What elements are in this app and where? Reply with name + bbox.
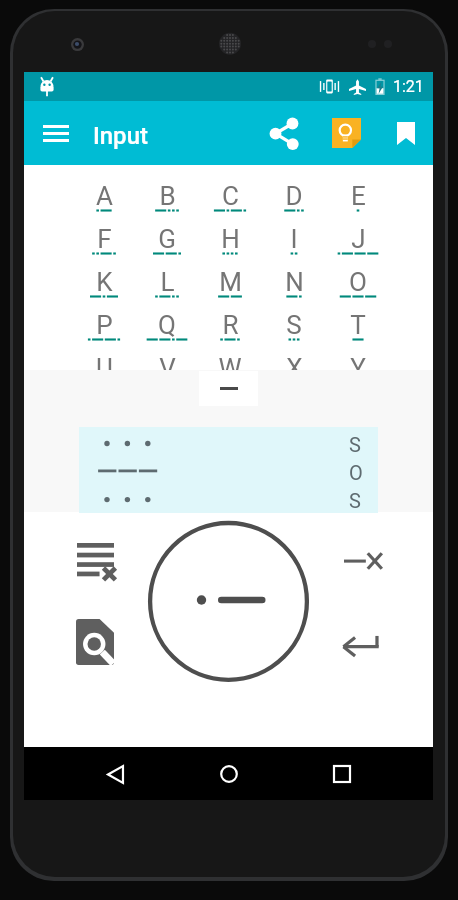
staticText: R (222, 310, 239, 340)
staticText: T (350, 310, 366, 340)
staticText: K (96, 267, 113, 297)
button[interactable]: Delete last symbol (339, 537, 387, 585)
button[interactable]: I (262, 224, 326, 267)
button[interactable]: W dash (199, 371, 258, 406)
button[interactable]: R (198, 310, 262, 353)
button[interactable]: Q (135, 310, 198, 353)
button[interactable]: B (135, 181, 198, 224)
button[interactable]: H (198, 224, 262, 267)
button[interactable]: Morse input key (146, 519, 311, 684)
button[interactable]: N (262, 267, 326, 310)
button[interactable]: F (72, 224, 135, 267)
staticText: V (159, 353, 176, 370)
staticText: I (290, 224, 298, 254)
staticText: X (286, 353, 303, 370)
button[interactable]: V (135, 353, 198, 370)
staticText: 1:21 (393, 77, 424, 96)
staticText: S (349, 489, 361, 512)
button[interactable]: S (262, 310, 326, 353)
button[interactable]: C (198, 181, 262, 224)
staticText: S (286, 310, 302, 340)
staticText: F (97, 224, 112, 254)
staticText: A (96, 181, 113, 211)
staticText: P (96, 310, 113, 340)
button[interactable]: Back (93, 752, 137, 796)
staticText: H (221, 224, 240, 254)
staticText: S (349, 433, 361, 456)
staticText: B (159, 181, 176, 211)
button[interactable]: M (198, 267, 262, 310)
button[interactable]: Share (260, 109, 308, 157)
staticText: E (351, 181, 366, 211)
button[interactable]: P (72, 310, 135, 353)
staticText: D (285, 181, 303, 211)
button[interactable]: Bookmark (382, 109, 430, 157)
button[interactable]: U (72, 353, 135, 370)
staticText: J (351, 224, 366, 254)
button[interactable]: O (326, 267, 390, 310)
button[interactable]: E (326, 181, 390, 224)
button[interactable]: L (135, 267, 198, 310)
button[interactable]: Home (207, 752, 251, 796)
button[interactable]: W (198, 353, 262, 370)
staticText: W (218, 353, 242, 370)
button[interactable]: Open navigation drawer (32, 109, 80, 157)
staticText: Input (93, 122, 148, 150)
button[interactable]: Y (326, 353, 390, 370)
button[interactable]: K (72, 267, 135, 310)
button[interactable]: Save to Keep (322, 109, 370, 157)
button[interactable]: J (326, 224, 390, 267)
staticText: N (285, 267, 304, 297)
button[interactable]: A (72, 181, 135, 224)
button[interactable]: D (262, 181, 326, 224)
button[interactable]: Search document (71, 618, 119, 666)
staticText: O (349, 461, 363, 484)
staticText: C (222, 181, 239, 211)
staticText: L (160, 267, 175, 297)
staticText: O (349, 267, 367, 297)
staticText: M (219, 267, 242, 297)
button[interactable]: G (135, 224, 198, 267)
button[interactable]: Recents (320, 752, 364, 796)
staticText: Q (158, 310, 176, 340)
button[interactable]: S (79, 427, 378, 513)
button[interactable]: T (326, 310, 390, 353)
button[interactable]: Enter (337, 619, 385, 667)
staticText: Y (350, 353, 366, 370)
button[interactable]: X (262, 353, 326, 370)
staticText: G (158, 224, 176, 254)
staticText: U (96, 353, 113, 370)
button[interactable]: Clear all text (71, 538, 119, 586)
